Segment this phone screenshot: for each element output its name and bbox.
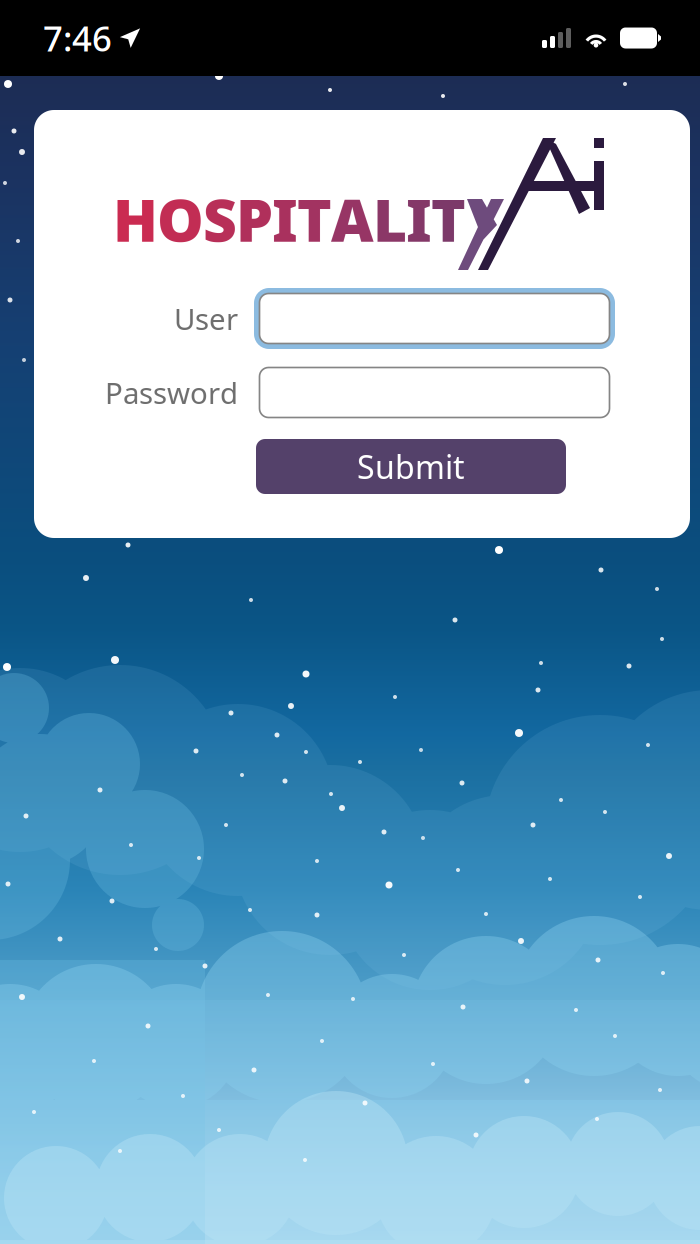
staticText: P: [236, 180, 273, 258]
staticText: User: [174, 299, 238, 338]
staticText: O: [157, 180, 204, 258]
staticText: Submit: [357, 445, 465, 488]
staticText: L: [373, 180, 407, 258]
staticText: Password: [105, 373, 238, 412]
staticText: T: [431, 180, 466, 258]
staticText: H: [113, 180, 158, 258]
staticText: 7:46: [43, 15, 112, 61]
staticText: S: [203, 180, 237, 258]
staticText: T: [297, 180, 332, 258]
staticText: A: [331, 180, 374, 258]
button[interactable]: Submit: [256, 439, 566, 494]
staticText: I: [272, 180, 298, 258]
button[interactable]: [254, 362, 615, 423]
staticText: I: [406, 180, 432, 258]
button[interactable]: [254, 288, 615, 349]
